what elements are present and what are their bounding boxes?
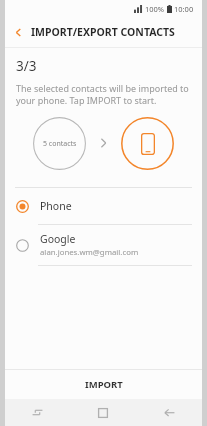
staticText: 3/3 <box>16 57 37 75</box>
button[interactable]: Home <box>70 399 136 426</box>
staticText: 100% <box>145 4 165 14</box>
staticText: IMPORT <box>85 378 123 391</box>
button[interactable]: IMPORT <box>5 370 202 399</box>
button[interactable]: Phone <box>5 188 202 224</box>
staticText: Phone <box>40 199 72 213</box>
staticText: Google <box>40 232 76 246</box>
staticText: The selected contacts will be imported t… <box>16 82 190 107</box>
staticText: IMPORT/EXPORT CONTACTS <box>31 25 175 39</box>
staticText: 10:00 <box>174 4 194 14</box>
button[interactable]: Google <box>5 225 202 265</box>
button[interactable]: Back <box>136 399 202 426</box>
button[interactable]: Recents <box>5 399 70 426</box>
button[interactable]: Back <box>5 17 31 47</box>
staticText: 5 contacts <box>43 139 77 149</box>
staticText: alan.jones.wm@gmail.com <box>40 247 139 258</box>
